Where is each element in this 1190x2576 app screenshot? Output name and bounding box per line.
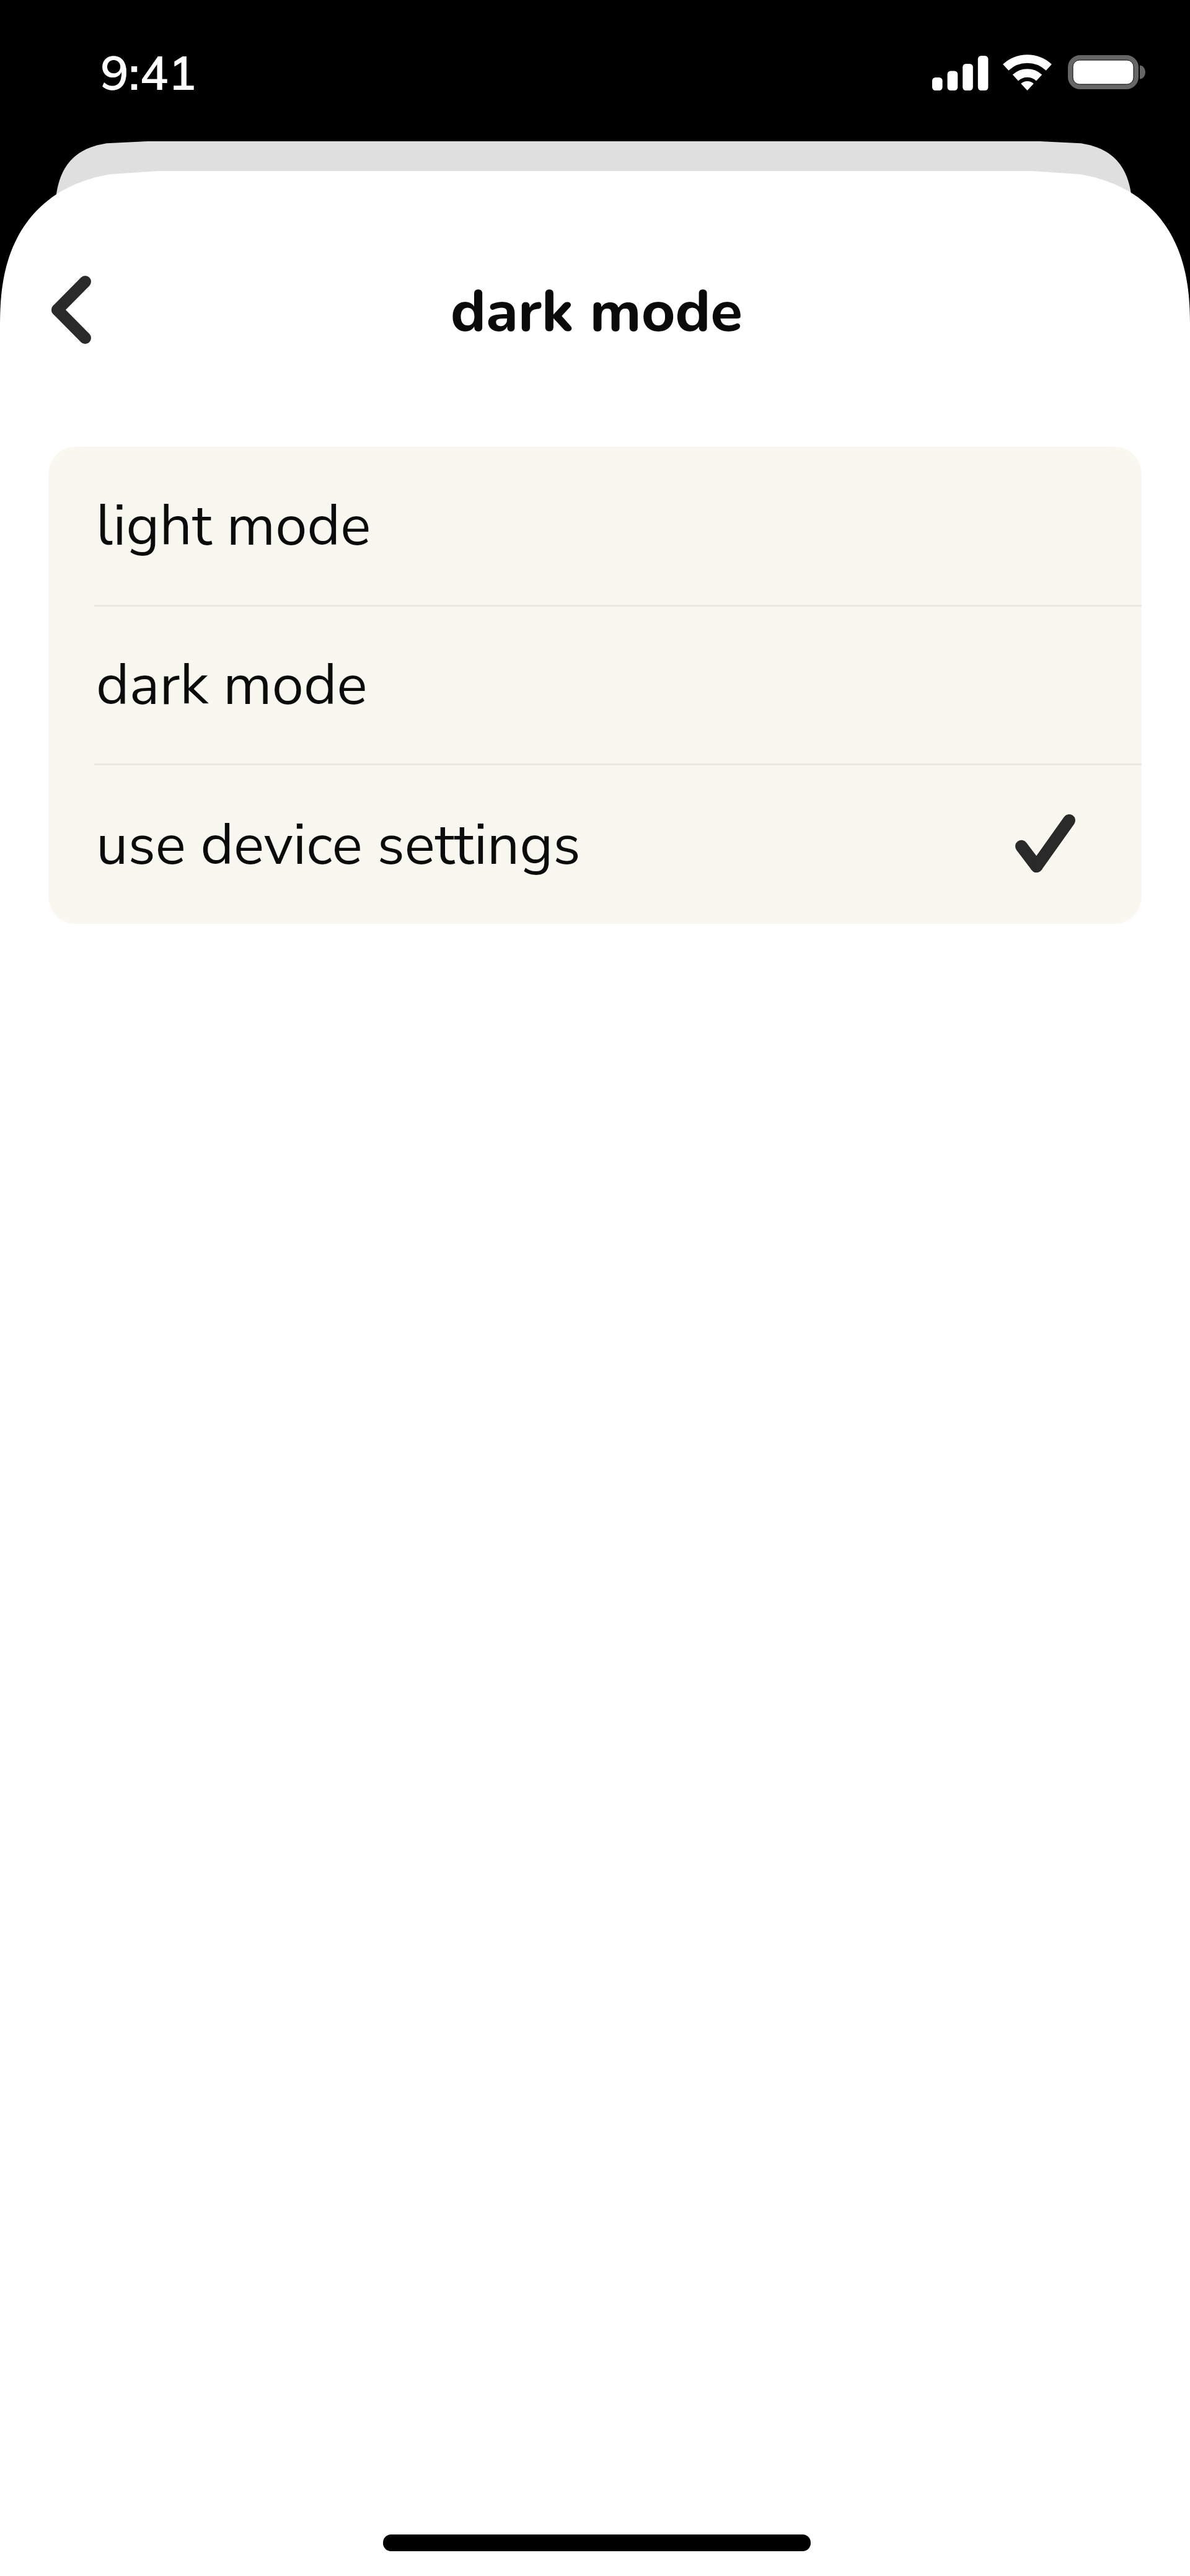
staticText: 9:41 [100,43,196,102]
staticText: light mode [96,487,371,565]
button[interactable]: Back [20,259,122,361]
staticText: dark mode [451,272,743,351]
button[interactable]: light mode [48,447,1142,605]
other: Home indicator [383,2534,811,2551]
staticText: use device settings [96,806,581,884]
button[interactable]: dark mode [48,607,1142,763]
staticText: dark mode [96,646,368,724]
button[interactable]: use device settings [48,765,1142,924]
